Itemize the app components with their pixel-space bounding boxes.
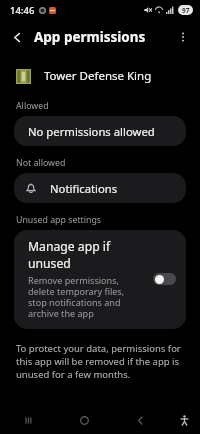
button[interactable]: Back <box>112 406 168 434</box>
button[interactable]: Home <box>56 406 112 434</box>
button[interactable]: Notifications <box>14 173 186 203</box>
staticText: Notifications <box>50 181 118 196</box>
button[interactable]: Manage app if unused <box>14 230 186 329</box>
button[interactable]: Tower Defense King <box>0 62 200 90</box>
staticText: Manage app if unused <box>28 238 145 272</box>
staticText: To protect your data, permissions for th… <box>16 342 184 381</box>
staticText: Remove permissions, delete temporary fil… <box>28 274 145 320</box>
staticText: Unused app settings <box>16 214 102 226</box>
button[interactable]: Accessibility <box>168 406 200 434</box>
button[interactable]: Recents <box>0 406 56 434</box>
staticText: Allowed <box>16 100 49 112</box>
staticText: 97 <box>182 6 190 15</box>
button[interactable]: Back <box>0 20 34 54</box>
staticText: App permissions <box>34 28 146 46</box>
staticText: Not allowed <box>16 157 66 169</box>
button[interactable]: More options <box>166 20 200 54</box>
staticText: Tower Defense King <box>44 68 152 84</box>
button[interactable]: No permissions allowed <box>14 116 186 146</box>
button[interactable]: Manage app if unused <box>153 273 176 285</box>
staticText: 14:46 <box>10 4 35 17</box>
staticText: No permissions allowed <box>28 124 155 139</box>
